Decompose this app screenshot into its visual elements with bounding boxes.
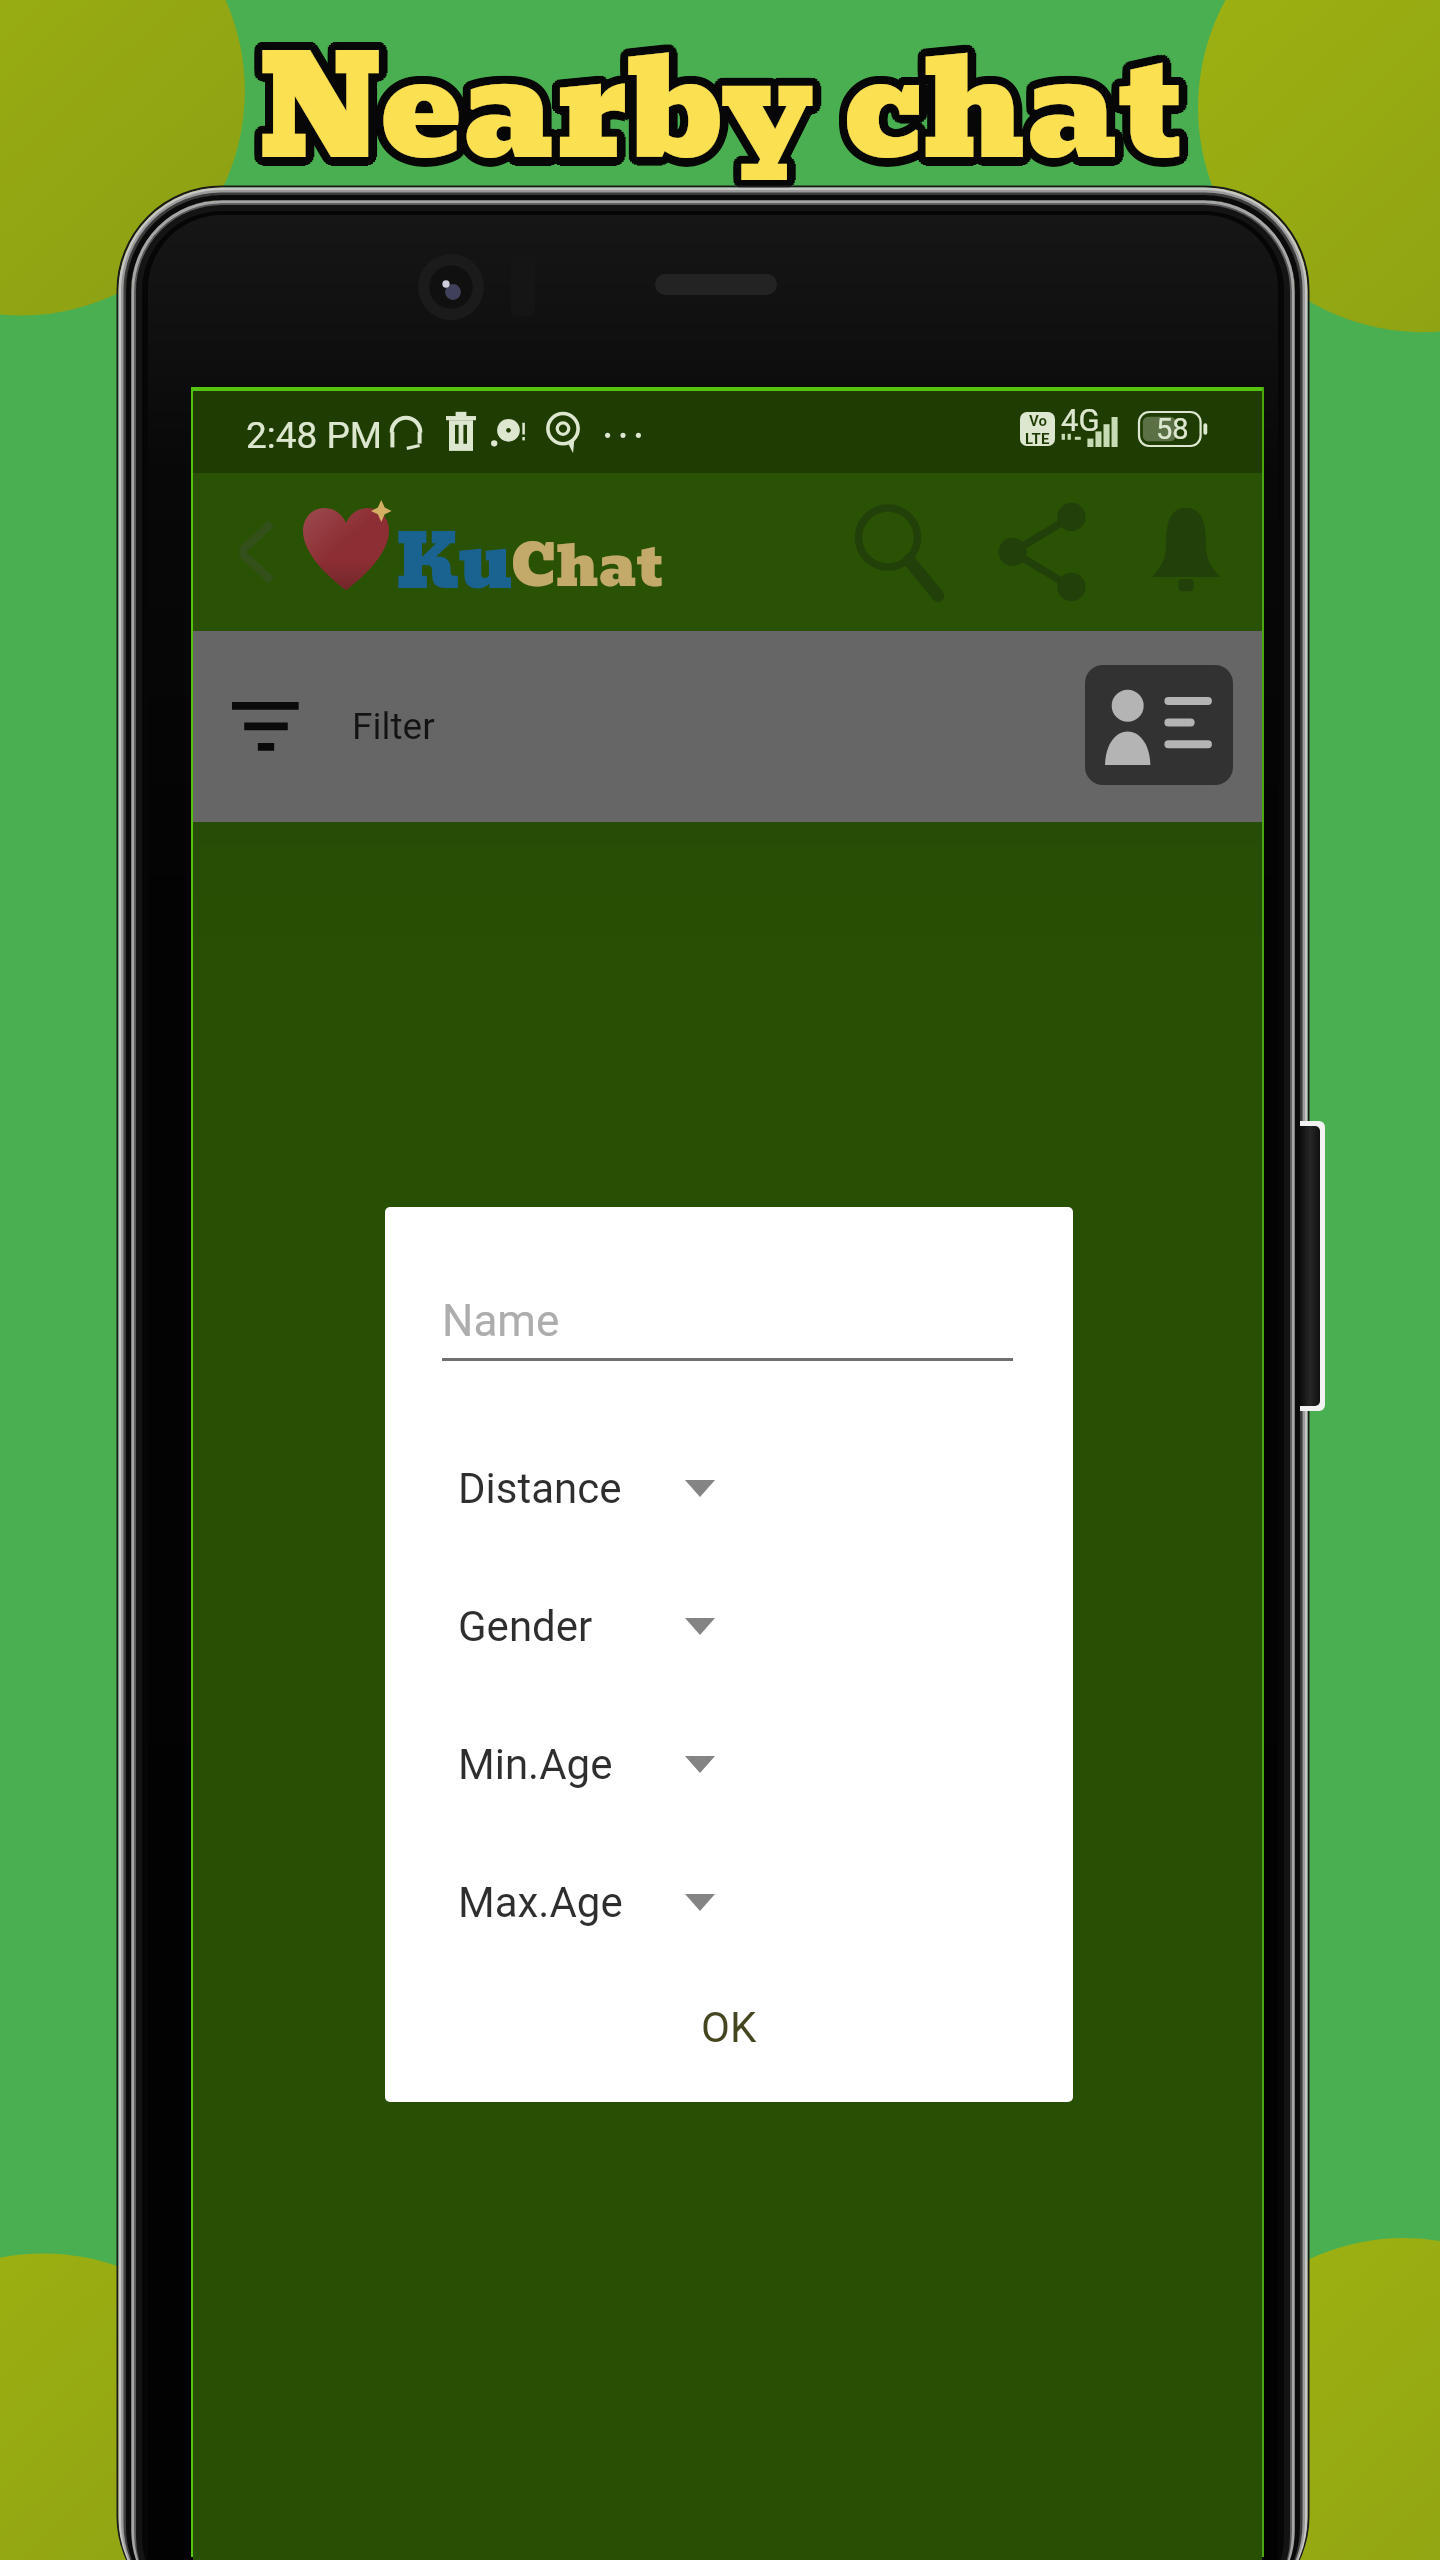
button[interactable]: Gender [415, 1578, 775, 1674]
staticText: Vo [1029, 412, 1047, 430]
staticText: Filter [352, 705, 435, 748]
staticText: Nearby chat [253, 7, 1177, 187]
staticText: Chat [511, 521, 663, 611]
staticText: Gender [458, 1602, 593, 1651]
button[interactable]: Distance [415, 1440, 775, 1536]
staticText: Nearby chat [253, 0, 1177, 173]
button[interactable]: Max.Age [415, 1854, 775, 1950]
staticText: Ku [396, 504, 513, 621]
staticText: Nearby chat [265, 5, 1189, 185]
staticText: Nearby chat [265, 0, 1189, 175]
staticText: Nearby chat [266, 3, 1190, 183]
button[interactable]: OK [619, 1969, 839, 2085]
button[interactable]: Name [415, 1273, 1015, 1369]
staticText: 58 [1156, 412, 1189, 446]
staticText: Nearby chat [255, 8, 1179, 188]
staticText: 4G [1061, 402, 1100, 438]
staticText: Min.Age [458, 1740, 613, 1789]
staticText: Nearby chat [251, 5, 1175, 185]
staticText: Nearby chat [250, 3, 1174, 183]
staticText: Nearby chat [258, 0, 1182, 180]
button[interactable]: Min.Age [415, 1716, 775, 1812]
button[interactable]: Back [207, 497, 303, 607]
staticText: Nearby chat [267, 0, 1191, 180]
staticText: Nearby chat [250, 0, 1174, 177]
staticText: Nearby chat [261, 0, 1185, 172]
staticText: Nearby chat [255, 0, 1179, 172]
staticText: Distance [458, 1464, 622, 1513]
staticText: Max.Age [458, 1878, 623, 1927]
staticText: Nearby chat [258, 0, 1182, 172]
staticText: OK [701, 2003, 757, 2052]
staticText: Nearby chat [266, 0, 1190, 177]
staticText: Nearby chat [263, 7, 1187, 187]
staticText: Nearby chat [251, 0, 1175, 175]
staticText: Nearby chat [261, 8, 1185, 188]
button[interactable]: Notifications [1130, 497, 1242, 607]
button[interactable]: Contacts [1085, 665, 1233, 785]
button[interactable]: Filter [201, 661, 741, 791]
button[interactable]: Share [988, 497, 1100, 607]
staticText: Nearby chat [258, 9, 1182, 189]
staticText: LTE [1025, 430, 1050, 446]
staticText: Nearby chat [263, 0, 1187, 173]
staticText: Name [442, 1295, 560, 1347]
staticText: Nearby chat [250, 0, 1174, 180]
button[interactable]: Search [844, 497, 956, 607]
staticText: 2:48 PM [246, 414, 383, 457]
